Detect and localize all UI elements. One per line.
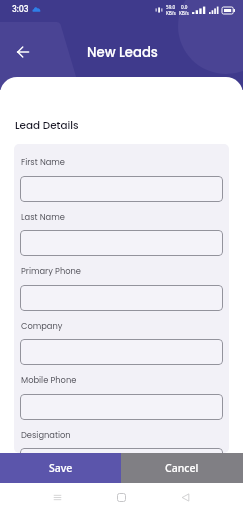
staticText: KB/s xyxy=(179,10,189,16)
staticText: Last Name xyxy=(21,211,65,223)
staticText: Primary Phone xyxy=(21,265,81,277)
button[interactable]: Back xyxy=(172,484,199,511)
button[interactable]: Back xyxy=(9,38,36,65)
button[interactable] xyxy=(20,394,223,420)
staticText: Save xyxy=(49,461,73,475)
staticText: Company xyxy=(21,320,63,332)
staticText: New Leads xyxy=(87,43,158,61)
button[interactable] xyxy=(20,339,223,365)
button[interactable]: Home xyxy=(108,484,135,511)
staticText: 0.0 xyxy=(181,4,188,10)
button[interactable] xyxy=(20,230,223,256)
staticText: Designation xyxy=(21,429,71,441)
staticText: Cancel xyxy=(165,461,199,475)
button[interactable] xyxy=(20,176,223,202)
button[interactable] xyxy=(20,285,223,311)
staticText: Mobile Phone xyxy=(21,374,77,386)
staticText: KB/s xyxy=(166,10,176,16)
staticText: 3:03 xyxy=(12,4,29,15)
button[interactable] xyxy=(20,448,223,453)
button[interactable]: Recent apps xyxy=(44,484,71,511)
staticText: 59.0 xyxy=(166,4,176,10)
button[interactable]: Cancel xyxy=(121,453,243,483)
staticText: First Name xyxy=(21,156,66,168)
button[interactable]: Save xyxy=(0,453,121,483)
staticText: Lead Details xyxy=(15,118,79,133)
